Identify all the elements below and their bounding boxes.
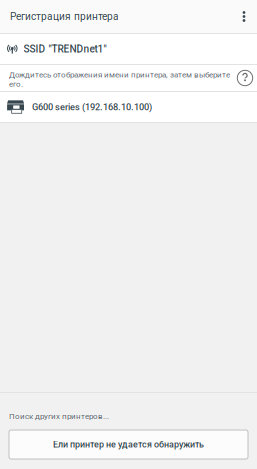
staticText: Ели принтер не удается обнаружить xyxy=(53,439,204,450)
staticText: G600 series (192.168.10.100) xyxy=(32,102,152,112)
button[interactable]: Help xyxy=(234,65,256,91)
button[interactable]: More options xyxy=(231,0,257,32)
staticText: SSID "TRENDnet1" xyxy=(24,43,107,55)
staticText: Дождитесь отображения имени принтера, за… xyxy=(9,70,230,89)
button[interactable]: G600 series (192.168.10.100) xyxy=(0,92,257,122)
staticText: Поиск других принтеров... xyxy=(9,412,109,421)
staticText: Регистрация принтера xyxy=(10,11,119,22)
button[interactable]: Ели принтер не удается обнаружить xyxy=(9,430,248,459)
